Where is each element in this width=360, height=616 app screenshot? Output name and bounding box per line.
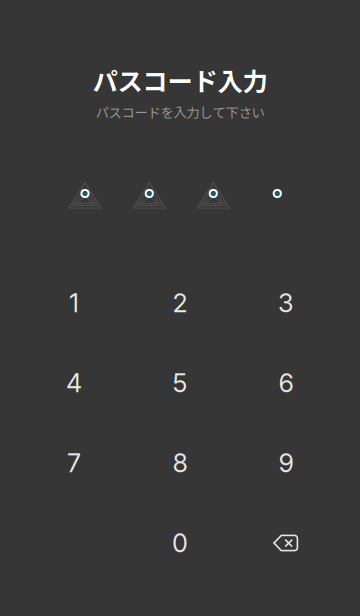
staticText: 1 [69,288,79,318]
button[interactable]: 1 [21,263,127,343]
button[interactable]: 7 [21,423,127,503]
staticText: 9 [278,448,293,478]
button[interactable]: 3 [233,263,339,343]
button[interactable]: 9 [233,423,339,503]
staticText: パスコード入力 [92,62,267,98]
button[interactable]: 8 [127,423,233,503]
staticText: 5 [172,368,187,398]
staticText: 0 [172,528,188,558]
staticText: 3 [278,288,294,318]
staticText: 2 [172,288,187,318]
staticText: 4 [66,368,82,398]
button[interactable]: 5 [127,343,233,423]
staticText: 7 [67,448,81,478]
button[interactable]: 2 [127,263,233,343]
button[interactable]: 6 [233,343,339,423]
button[interactable]: 0 [127,503,233,583]
staticText: 6 [278,368,293,398]
staticText: パスコードを入力して下さい [95,102,264,122]
button[interactable]: Delete [233,503,339,583]
button[interactable]: 4 [21,343,127,423]
staticText: 8 [172,448,187,478]
